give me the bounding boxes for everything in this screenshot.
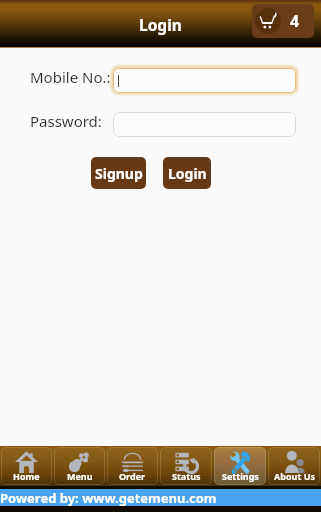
staticText: Login (168, 164, 207, 183)
staticText: Signup (95, 164, 143, 183)
button[interactable] (113, 68, 296, 93)
staticText: Mobile No.: (30, 67, 111, 87)
staticText: About Us (274, 470, 315, 482)
button[interactable]: Signup (91, 157, 146, 189)
button[interactable]: Status (160, 447, 212, 485)
button[interactable]: Order (107, 447, 158, 485)
button[interactable]: Menu (54, 447, 105, 485)
staticText: Status (172, 470, 201, 482)
staticText: Order (119, 470, 146, 482)
staticText: 4 (290, 10, 300, 32)
staticText: Settings (222, 470, 259, 482)
button[interactable] (113, 112, 296, 137)
staticText: Login (139, 14, 182, 35)
button[interactable]: Settings (214, 447, 266, 485)
button[interactable]: Home (1, 447, 52, 485)
staticText: Password: (30, 111, 102, 131)
button[interactable]: Login (163, 157, 211, 189)
staticText: Menu (67, 470, 93, 482)
button[interactable]: About Us (268, 447, 320, 485)
staticText: Home (13, 470, 40, 482)
staticText: Powered by: www.getemenu.com (0, 489, 217, 506)
button[interactable]: Cart, 4 items (252, 4, 314, 38)
